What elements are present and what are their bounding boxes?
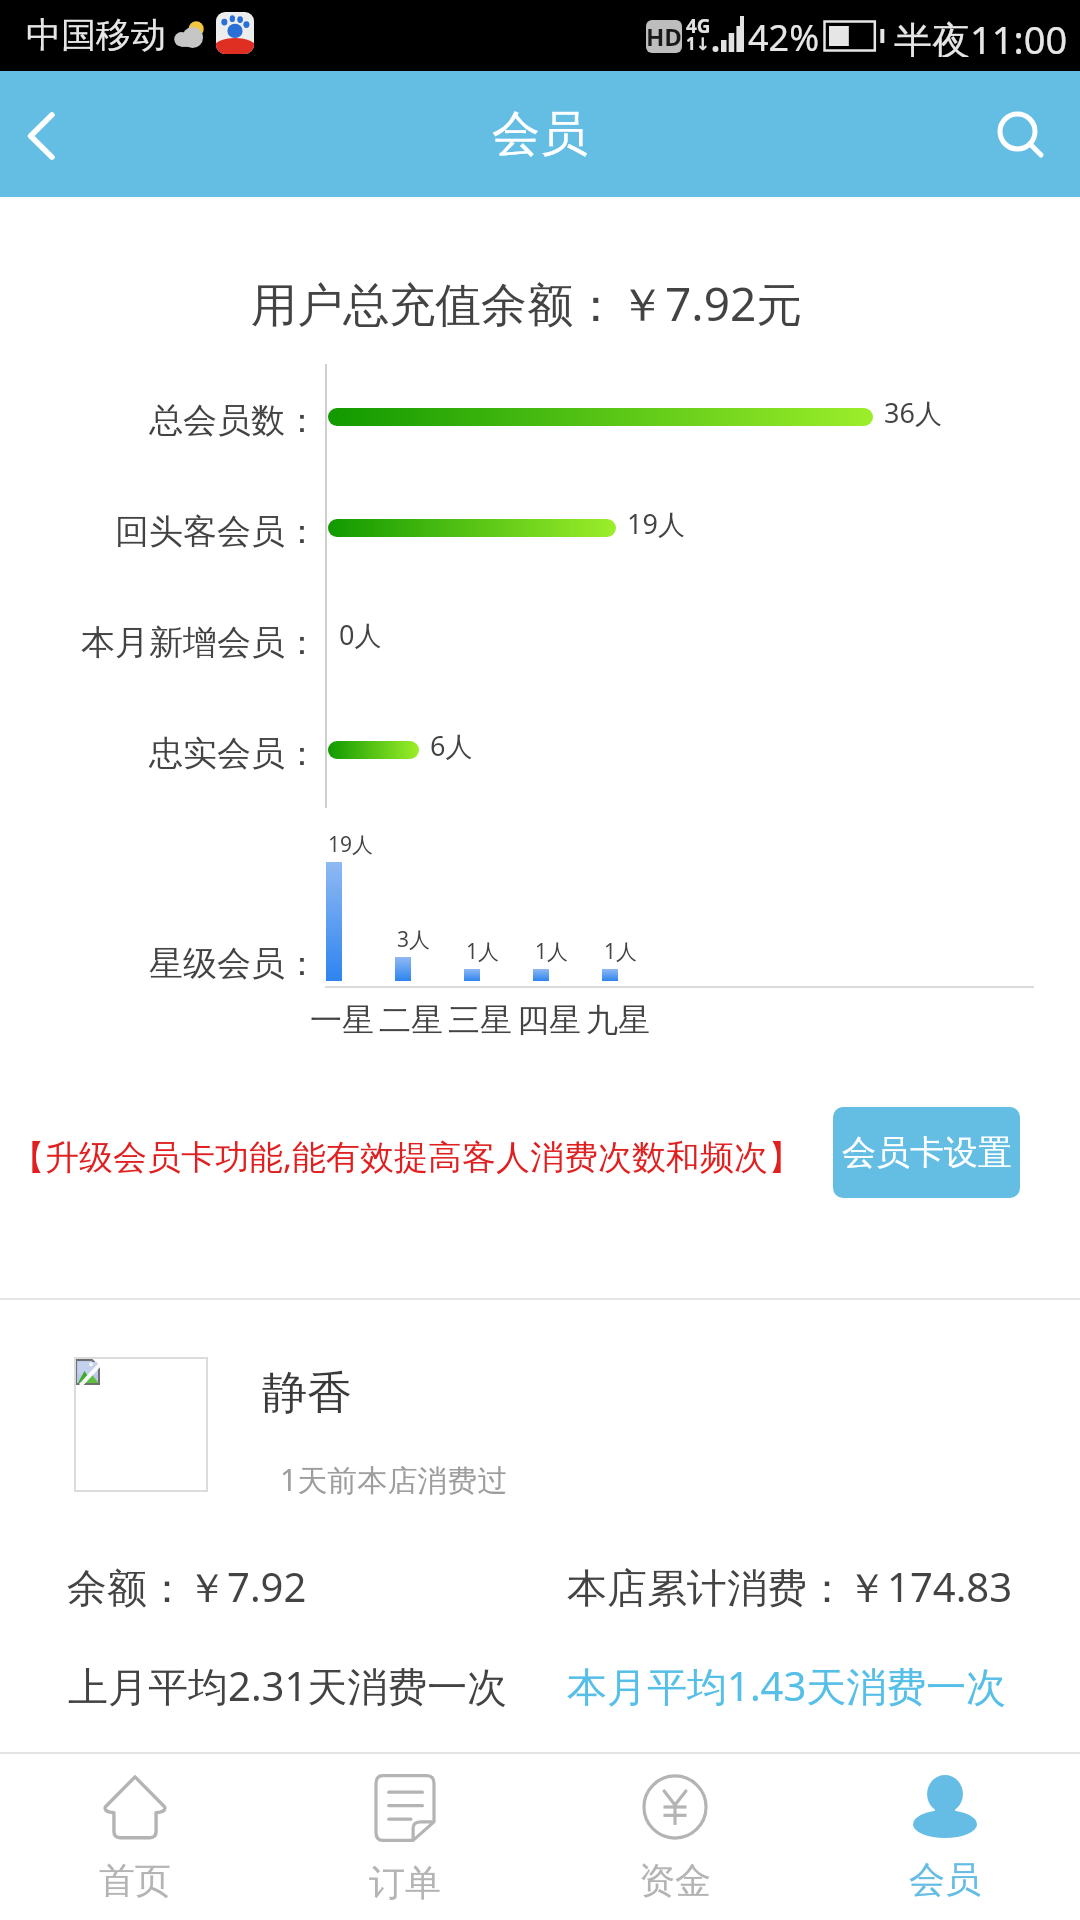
staticText: 四星: [517, 1000, 581, 1040]
staticText: 本月新增会员：: [81, 621, 319, 664]
staticText: HD: [646, 20, 682, 53]
staticText: 会员卡设置: [842, 1131, 1012, 1174]
staticText: 九星: [586, 1000, 650, 1040]
staticText: 回头客会员：: [115, 510, 319, 553]
staticText: 会员: [492, 104, 588, 164]
staticText: 1↓: [686, 32, 710, 55]
button[interactable]: 会员卡设置: [833, 1107, 1020, 1198]
staticText: 静香: [262, 1365, 352, 1422]
button[interactable]: 资金: [540, 1754, 810, 1920]
staticText: 总会员数：: [149, 399, 319, 442]
staticText: 1人: [466, 937, 500, 966]
staticText: 【升级会员卡功能,能有效提高客人消费次数和频次】: [11, 1133, 803, 1179]
staticText: 1天前本店消费过: [280, 1459, 508, 1499]
staticText: 订单: [369, 1860, 441, 1905]
button[interactable]: 会员: [810, 1754, 1080, 1920]
staticText: 19人: [627, 505, 685, 541]
button[interactable]: Search: [964, 71, 1080, 197]
staticText: 6人: [430, 727, 473, 763]
staticText: 1人: [535, 937, 569, 966]
staticText: 半夜11:00: [894, 13, 1068, 57]
staticText: 二星: [379, 1000, 443, 1040]
staticText: 上月平均2.31天消费一次: [68, 1658, 508, 1708]
staticText: 3人: [397, 925, 431, 954]
staticText: 会员: [909, 1857, 981, 1902]
staticText: 42%: [748, 13, 820, 57]
staticText: 1人: [604, 937, 638, 966]
staticText: 用户总充值余额：￥7.92元: [251, 272, 803, 335]
staticText: 19人: [328, 830, 374, 859]
staticText: 本月平均1.43天消费一次: [567, 1658, 1007, 1708]
staticText: 36人: [884, 394, 942, 430]
button[interactable]: 首页: [0, 1754, 270, 1920]
staticText: 资金: [639, 1858, 711, 1903]
staticText: 忠实会员：: [149, 732, 319, 775]
staticText: 本店累计消费：￥174.83: [567, 1559, 1013, 1609]
staticText: 一星: [310, 1000, 374, 1040]
button[interactable]: Back: [0, 71, 96, 197]
staticText: 首页: [99, 1858, 171, 1903]
staticText: 中国移动: [26, 13, 166, 57]
staticText: 余额：￥7.92: [67, 1559, 307, 1609]
staticText: 三星: [448, 1000, 512, 1040]
staticText: 0人: [339, 616, 382, 652]
button[interactable]: 订单: [270, 1754, 540, 1920]
staticText: 4G: [686, 13, 711, 39]
staticText: 星级会员：: [149, 942, 319, 985]
